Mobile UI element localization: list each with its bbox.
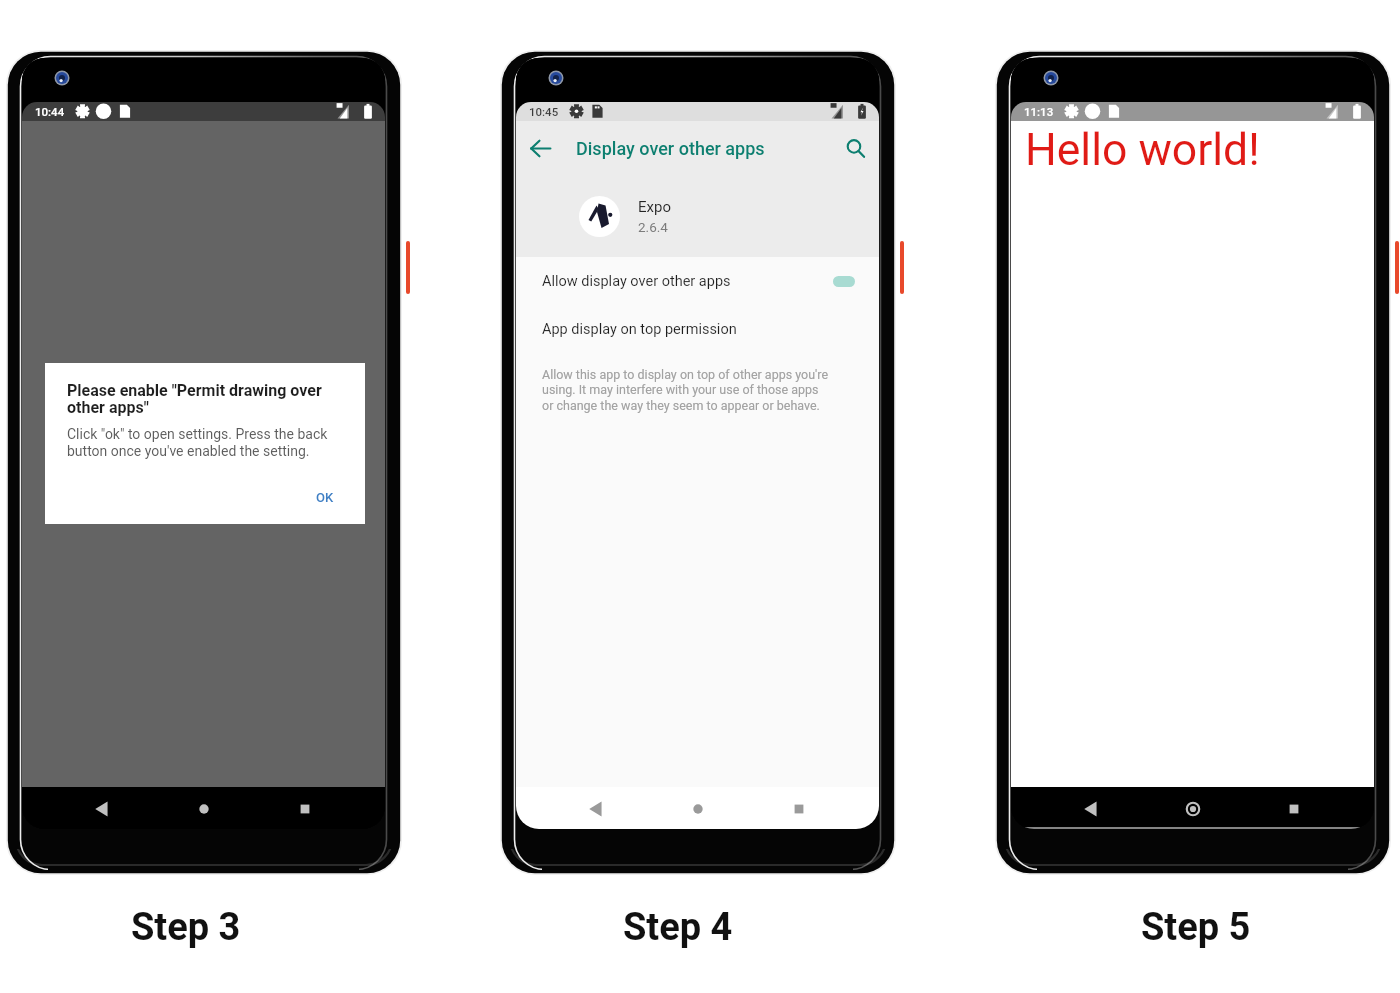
- staticText: App display on top permission: [542, 321, 737, 338]
- button[interactable]: Back: [516, 124, 564, 172]
- button[interactable]: Back: [1071, 787, 1111, 827]
- staticText: Please enable "Permit drawing over other…: [67, 381, 349, 417]
- button[interactable]: App display on top permission: [516, 305, 879, 354]
- staticText: Display over other apps: [576, 138, 765, 159]
- staticText: Allow this app to display on top of othe…: [542, 367, 830, 413]
- staticText: 2.6.4: [638, 219, 668, 235]
- button[interactable]: Home: [678, 787, 718, 827]
- staticText: Step 5: [1141, 905, 1251, 950]
- button[interactable]: OK: [316, 490, 365, 524]
- button[interactable]: Back: [576, 787, 616, 827]
- button[interactable]: Home: [1173, 787, 1213, 827]
- button[interactable]: Search: [831, 124, 879, 172]
- button[interactable]: Recents: [1274, 787, 1314, 827]
- button[interactable]: Recents: [779, 787, 819, 827]
- staticText: 11:13: [1024, 105, 1054, 118]
- staticText: Allow display over other apps: [542, 273, 731, 290]
- staticText: Click "ok" to open settings. Press the b…: [67, 426, 349, 460]
- staticText: Expo: [638, 198, 671, 216]
- button[interactable]: Recents: [285, 787, 325, 827]
- staticText: 10:44: [35, 105, 65, 118]
- button[interactable]: Back: [82, 787, 122, 827]
- staticText: Step 4: [623, 905, 733, 950]
- staticText: Hello world!: [1025, 124, 1260, 176]
- staticText: Step 3: [131, 905, 241, 950]
- button[interactable]: Allow display over other apps: [516, 257, 879, 305]
- staticText: OK: [316, 490, 334, 505]
- staticText: 10:45: [529, 105, 559, 118]
- button[interactable]: Home: [184, 787, 224, 827]
